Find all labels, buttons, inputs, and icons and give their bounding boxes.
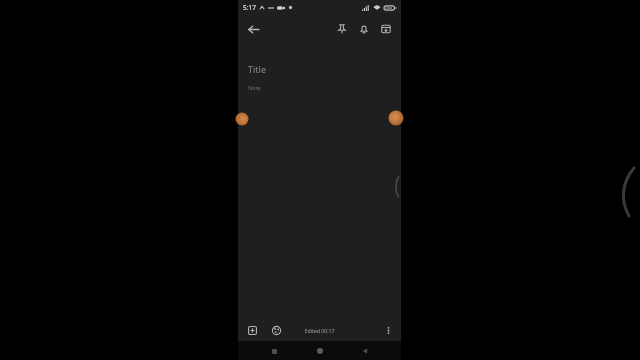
button[interactable]: Add: [242, 320, 262, 340]
button[interactable]: Home: [311, 342, 329, 360]
staticText: 5:17: [243, 3, 256, 12]
button[interactable]: Colour palette: [266, 320, 286, 340]
button[interactable]: Reminder: [353, 18, 375, 40]
button[interactable]: Pin: [331, 18, 353, 40]
button[interactable]: More options: [379, 321, 397, 339]
staticText: Note: [248, 84, 261, 91]
staticText: Edited 00:17: [304, 327, 335, 334]
button[interactable]: Archive: [375, 18, 397, 40]
button[interactable]: Back: [356, 342, 374, 360]
button[interactable]: Back: [242, 18, 264, 40]
staticText: Title: [248, 63, 266, 75]
button[interactable]: Recents: [265, 342, 283, 360]
